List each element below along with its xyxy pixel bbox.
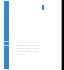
button[interactable]: Navigation rail <box>4 1 9 69</box>
staticText: Some faint text here <box>16 43 40 46</box>
staticText: more faint content <box>16 49 38 52</box>
staticText: another line of text <box>16 46 39 49</box>
staticText: last line <box>16 52 26 55</box>
